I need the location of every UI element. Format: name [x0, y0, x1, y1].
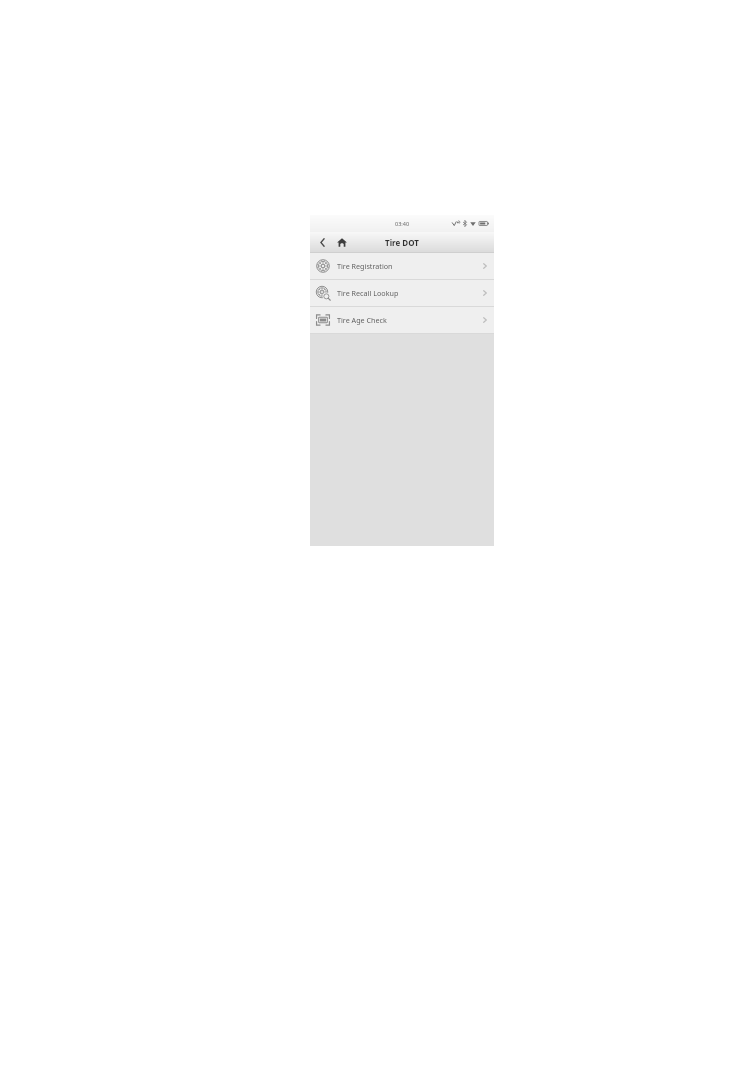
- button[interactable]: Tire Registration: [310, 253, 494, 279]
- staticText: Tire Registration: [337, 261, 393, 271]
- button[interactable]: Back: [315, 235, 329, 249]
- staticText: 03:40: [395, 220, 410, 227]
- button[interactable]: Tire Age Check: [310, 307, 494, 333]
- staticText: Tire DOT: [385, 237, 419, 248]
- staticText: Tire Recall Lookup: [337, 288, 399, 298]
- staticText: Tire Age Check: [337, 315, 387, 325]
- button[interactable]: Home: [335, 235, 349, 249]
- button[interactable]: Tire Recall Lookup: [310, 280, 494, 306]
